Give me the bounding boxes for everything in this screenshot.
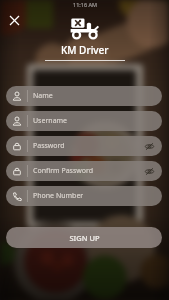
button[interactable]: Confirm Password	[6, 161, 162, 181]
button[interactable]: Name	[6, 86, 162, 106]
button[interactable]: Phone Number	[6, 186, 162, 206]
button[interactable]: SIGN UP	[6, 227, 162, 248]
button[interactable]: Close	[4, 10, 25, 31]
button[interactable]: Password	[6, 136, 162, 156]
staticText: Phone Number	[33, 191, 84, 201]
button[interactable]: Show password	[144, 166, 155, 177]
staticText: 11:16 AM	[73, 1, 97, 8]
button[interactable]: Show password	[144, 141, 155, 152]
button[interactable]: Username	[6, 111, 162, 131]
staticText: Confirm Password	[33, 166, 94, 176]
staticText: Username	[33, 116, 68, 126]
staticText: KM Driver	[61, 43, 109, 57]
staticText: SIGN UP	[69, 233, 100, 243]
staticText: Name	[33, 91, 53, 101]
staticText: Password	[33, 141, 65, 151]
